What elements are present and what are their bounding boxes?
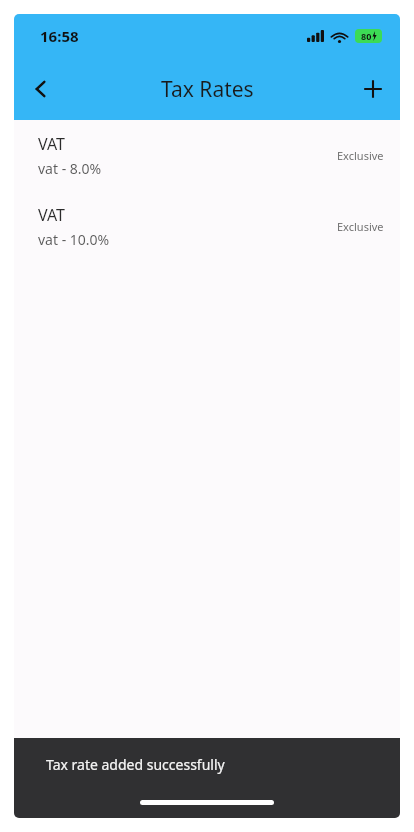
button[interactable]: Add tax rate	[346, 62, 400, 116]
staticText: vat - 10.0%	[38, 230, 110, 249]
staticText: VAT	[38, 133, 65, 155]
button[interactable]: VAT	[14, 191, 400, 262]
staticText: Tax Rates	[161, 75, 254, 104]
staticText: Exclusive	[337, 219, 384, 234]
staticText: 80	[361, 30, 372, 42]
staticText: 16:58	[40, 26, 79, 46]
staticText: vat - 8.0%	[38, 159, 102, 178]
staticText: Exclusive	[337, 148, 384, 163]
staticText: Tax rate added successfully	[46, 755, 225, 774]
staticText: VAT	[38, 204, 65, 226]
button[interactable]: VAT	[14, 120, 400, 191]
button[interactable]: Back	[14, 62, 68, 116]
